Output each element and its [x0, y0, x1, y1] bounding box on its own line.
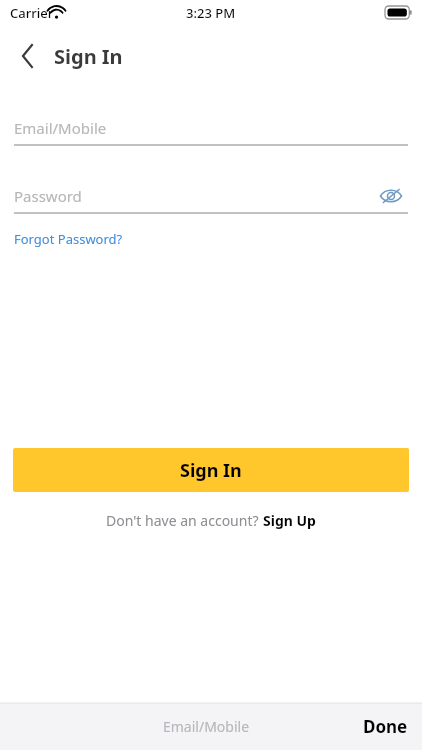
staticText: Carrier [10, 4, 54, 22]
staticText: Sign In [180, 458, 242, 483]
staticText: 3:23 PM [186, 4, 236, 22]
staticText: Email/Mobile [163, 717, 250, 736]
staticText: Don't have an account? [106, 511, 263, 530]
button[interactable]: Sign In [13, 448, 409, 492]
button[interactable]: Back [6, 38, 50, 74]
button[interactable]: Password [14, 178, 408, 214]
staticText: Sign In [54, 43, 123, 70]
staticText: Done [363, 715, 408, 738]
button[interactable]: Show password [374, 181, 408, 211]
button[interactable]: Don't have an account? [106, 511, 316, 530]
staticText: Forgot Password? [14, 230, 123, 248]
button[interactable]: Email/Mobile [14, 110, 408, 146]
staticText: Email/Mobile [14, 118, 107, 138]
button[interactable]: Forgot Password? [14, 230, 123, 248]
staticText: Sign Up [263, 511, 316, 530]
button[interactable]: Done [363, 715, 408, 738]
staticText: Password [14, 186, 82, 206]
